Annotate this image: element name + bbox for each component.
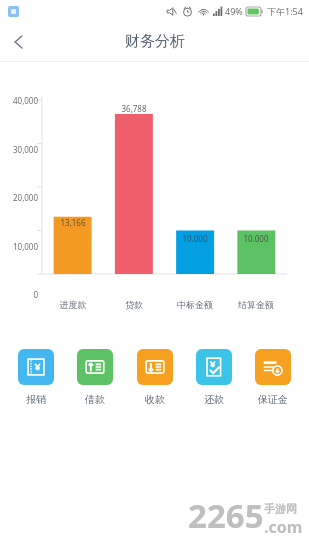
button[interactable]: 借款 [68, 349, 122, 406]
button[interactable]: 还款 [187, 349, 241, 406]
button[interactable]: 收款 [128, 349, 182, 406]
staticText: 下午1:54 [267, 5, 303, 17]
staticText: 手游网 [264, 502, 297, 516]
staticText: 进度款 [43, 299, 103, 310]
button[interactable]: 保证金 [246, 349, 300, 406]
staticText: 报销 [26, 393, 46, 406]
staticText: 10.000 [169, 233, 221, 244]
staticText: 还款 [204, 393, 224, 406]
staticText: 36,788 [108, 103, 160, 114]
staticText: 0 [2, 289, 38, 300]
staticText: 40,000 [2, 95, 38, 106]
staticText: 2265 [188, 493, 264, 538]
button[interactable]: 报销 [9, 349, 63, 406]
staticText: 30,000 [2, 144, 38, 155]
staticText: 20,000 [2, 192, 38, 203]
staticText: 财务分析 [125, 32, 185, 51]
button[interactable]: Back [0, 23, 38, 61]
staticText: 10,000 [2, 241, 38, 252]
staticText: 中标金额 [165, 299, 225, 310]
staticText: 贷款 [104, 299, 164, 310]
staticText: 保证金 [258, 393, 288, 406]
staticText: 10.000 [230, 233, 282, 244]
staticText: 49% [225, 5, 243, 17]
staticText: 借款 [85, 393, 105, 406]
staticText: 结算金额 [226, 299, 286, 310]
staticText: .com [264, 516, 303, 538]
staticText: 收款 [145, 393, 165, 406]
staticText: 13,166 [47, 217, 99, 228]
